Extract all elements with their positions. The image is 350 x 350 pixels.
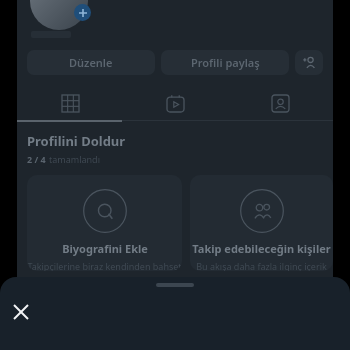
button[interactable]: Kapat	[7, 298, 35, 326]
staticText: Profilini Doldur	[27, 132, 126, 150]
button[interactable]: Etiketlenenler	[228, 86, 333, 120]
button[interactable]: Hikaye ekle	[74, 4, 91, 21]
button[interactable]: Profili paylaş	[161, 50, 289, 75]
button[interactable]: Gönderiler	[17, 86, 123, 120]
button[interactable]: Takip edebileceğin kişiler	[190, 175, 333, 271]
button[interactable]: Reels	[123, 86, 228, 120]
button[interactable]: Kişi ekle	[295, 50, 323, 75]
staticText: 2 / 4	[27, 153, 49, 165]
staticText: Bu akışa daha fazla ilginç içerik	[196, 260, 327, 271]
staticText: tamamlandı	[49, 153, 100, 165]
button[interactable]: Biyografini Ekle	[27, 175, 182, 271]
staticText: Takipçilerine biraz kendinden bahset	[27, 260, 182, 271]
staticText: Profili paylaş	[191, 55, 260, 70]
staticText: Takip edebileceğin kişiler	[192, 241, 331, 256]
staticText: Biyografini Ekle	[62, 241, 148, 256]
button[interactable]: Düzenle	[27, 50, 155, 75]
staticText: Düzenle	[69, 55, 113, 70]
